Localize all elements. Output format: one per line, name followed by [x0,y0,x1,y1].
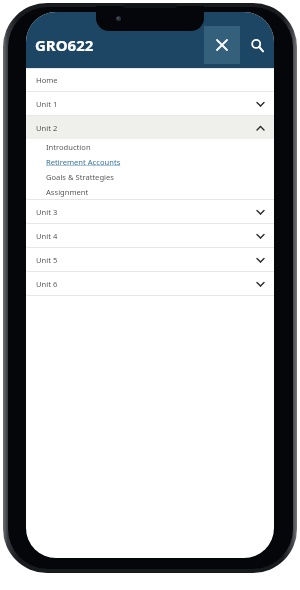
button[interactable]: Unit 5 [26,248,274,271]
button[interactable]: Unit 1 [26,92,274,115]
button[interactable]: Close menu [204,26,240,64]
staticText: Introduction [46,142,91,152]
button[interactable]: Unit 3 [26,200,274,223]
button[interactable]: Retirement Accounts [26,154,274,169]
button[interactable]: Assignment [26,184,274,199]
staticText: Unit 1 [36,99,58,109]
staticText: Assignment [46,187,89,197]
button[interactable]: Unit 4 [26,224,274,247]
staticText: Unit 6 [36,279,58,289]
staticText: GRO622 [35,35,94,55]
button[interactable]: Search [240,26,274,64]
button[interactable]: Goals & Strattegies [26,169,274,184]
button[interactable]: Unit 2 [26,116,274,139]
staticText: Goals & Strattegies [46,172,114,182]
button[interactable]: Unit 6 [26,272,274,295]
staticText: Unit 2 [36,123,58,133]
staticText: Unit 5 [36,255,58,265]
staticText: Unit 3 [36,207,58,217]
staticText: Retirement Accounts [46,157,121,167]
button[interactable]: Home [26,69,274,91]
button[interactable]: Introduction [26,139,274,154]
staticText: Home [36,75,58,85]
staticText: Unit 4 [36,231,58,241]
